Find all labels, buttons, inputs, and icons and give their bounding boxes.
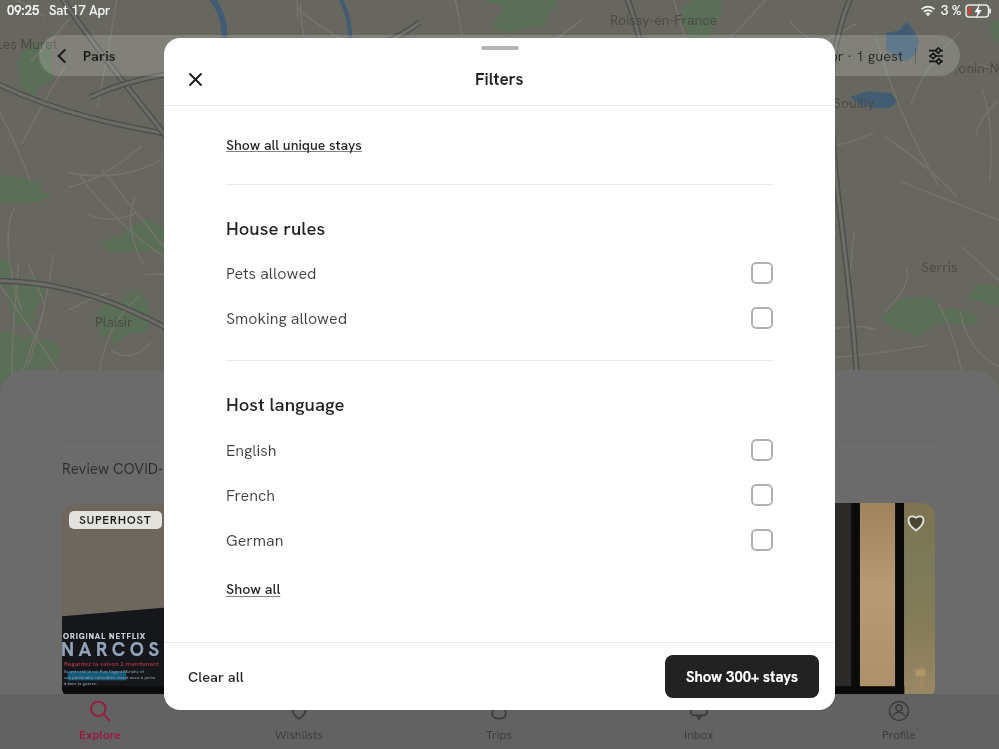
button[interactable]: ORIGINAL NETFLIX bbox=[62, 503, 341, 700]
staticText: German bbox=[226, 530, 284, 551]
staticText: Smoking allowed bbox=[226, 308, 348, 329]
staticText: ORIGINAL NETFLIX bbox=[63, 631, 147, 641]
staticText: Ils ont créé le roi. Puis l'agent Murphy… bbox=[64, 668, 156, 686]
staticText: Roissy-en-France bbox=[610, 11, 717, 29]
staticText: 17 Apr - 18 Apr · 1 guest bbox=[744, 46, 903, 65]
staticText: .onin-Ne bbox=[955, 59, 999, 77]
staticText: 3 % bbox=[941, 2, 962, 19]
staticText: Trips bbox=[486, 727, 513, 743]
staticText: Clear all bbox=[188, 667, 244, 686]
button[interactable]: Back bbox=[39, 35, 960, 76]
button[interactable]: Inbox bbox=[599, 694, 799, 749]
staticText: Pets allowed bbox=[226, 263, 317, 284]
button[interactable]: German bbox=[164, 529, 835, 551]
staticText: 09:25 bbox=[7, 2, 40, 19]
button[interactable]: Wishlists bbox=[199, 694, 399, 749]
staticText: Show all unique stays bbox=[226, 136, 362, 154]
staticText: Serris bbox=[921, 258, 958, 276]
button[interactable]: Show all unique stays bbox=[226, 136, 362, 154]
staticText: Paris bbox=[83, 46, 116, 65]
staticText: House rules bbox=[226, 216, 326, 240]
staticText: Inbox bbox=[684, 727, 714, 743]
staticText: Show 300+ stays bbox=[686, 667, 798, 686]
staticText: Show all bbox=[226, 580, 281, 599]
staticText: Explore bbox=[79, 727, 121, 743]
button[interactable]: Smoking allowed bbox=[164, 307, 835, 329]
button[interactable]: Show all bbox=[226, 580, 281, 599]
staticText: Wishlists bbox=[275, 727, 323, 743]
staticText: SUPERHOST bbox=[79, 512, 152, 528]
staticText: Host language bbox=[226, 392, 345, 416]
button[interactable]: Clear all bbox=[188, 667, 244, 686]
button[interactable]: Close bbox=[175, 59, 215, 99]
staticText: English bbox=[226, 440, 277, 461]
staticText: Filters bbox=[475, 68, 524, 90]
button[interactable]: Save to wishlist bbox=[904, 510, 928, 534]
button[interactable]: Save to wishlist bbox=[656, 503, 935, 700]
staticText: Profile bbox=[882, 727, 916, 743]
staticText: Sat 17 Apr bbox=[49, 2, 111, 19]
button[interactable]: Explore bbox=[0, 694, 199, 749]
button[interactable]: Trips bbox=[399, 694, 599, 749]
staticText: French bbox=[226, 485, 275, 506]
button[interactable]: Profile bbox=[799, 694, 999, 749]
other: Filters bbox=[929, 48, 943, 64]
staticText: NARCOS bbox=[62, 637, 164, 662]
staticText: Review COVID-19 travel restrictions befo… bbox=[62, 459, 420, 479]
staticText: Souilly bbox=[833, 94, 875, 112]
staticText: Les Muret bbox=[0, 35, 58, 53]
staticText: Regardez la saison 2 maintenant bbox=[64, 659, 159, 667]
button[interactable]: Pets allowed bbox=[164, 262, 835, 284]
button[interactable]: Show 300+ stays bbox=[665, 655, 819, 698]
button[interactable]: French bbox=[164, 484, 835, 506]
staticText: Plaisir bbox=[95, 313, 133, 331]
button[interactable]: English bbox=[164, 439, 835, 461]
other: Back bbox=[52, 46, 72, 66]
